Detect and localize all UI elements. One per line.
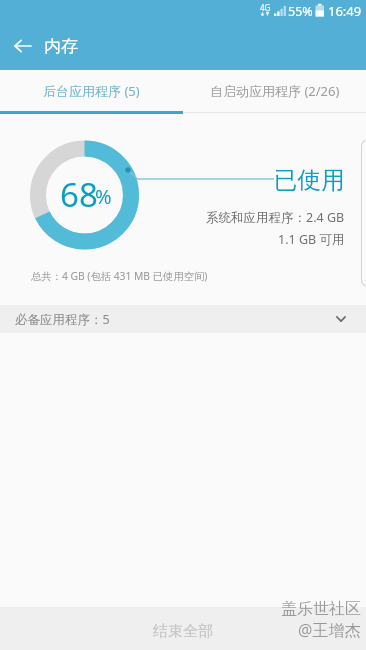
- staticText: 总共：4 GB (包括 431 MB 已使用空间): [31, 269, 208, 283]
- staticText: 55%: [288, 3, 313, 20]
- staticText: 1.1 GB 可用: [278, 231, 345, 248]
- staticText: 自启动应用程序 (2/26): [210, 82, 340, 100]
- staticText: 系统和应用程序：2.4 GB: [206, 209, 345, 226]
- staticText: @王增杰: [298, 619, 361, 641]
- button[interactable]: Back: [0, 22, 44, 70]
- staticText: 16:49: [328, 2, 362, 20]
- button[interactable]: 自启动应用程序 (2/26): [183, 70, 366, 111]
- staticText: 4G: [260, 2, 271, 13]
- staticText: 内存: [44, 36, 78, 57]
- staticText: 结束全部: [153, 622, 213, 641]
- staticText: 盖乐世社区: [281, 599, 361, 619]
- button[interactable]: 必备应用程序：5: [0, 305, 366, 333]
- button[interactable]: 结束全部: [0, 607, 366, 650]
- staticText: 必备应用程序：5: [15, 311, 110, 328]
- staticText: 已使用: [274, 165, 345, 195]
- staticText: 后台应用程序 (5): [43, 82, 140, 100]
- staticText: 68: [60, 172, 98, 212]
- button[interactable]: 后台应用程序 (5): [0, 70, 183, 111]
- staticText: %: [95, 183, 112, 210]
